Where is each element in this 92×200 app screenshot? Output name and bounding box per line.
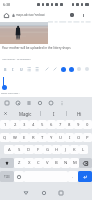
staticText: B (55, 160, 58, 166)
staticText: 3 (23, 122, 26, 128)
button[interactable]: Backspace (79, 158, 92, 168)
button[interactable]: Enter (78, 171, 92, 182)
staticText: Q (3, 135, 7, 141)
button[interactable]: 6 (47, 120, 56, 129)
button[interactable]: J (61, 145, 70, 154)
staticText: 6:38 (3, 2, 11, 7)
button[interactable]: 9 (74, 120, 83, 129)
button[interactable] (14, 171, 24, 182)
button[interactable]: G (43, 145, 52, 154)
staticText: Your mother will be uploaded in the litt… (2, 46, 71, 50)
button[interactable]: Hi (67, 108, 92, 119)
button[interactable]: More (75, 65, 83, 73)
button[interactable]: Emoji (59, 65, 67, 73)
button[interactable]: I (65, 133, 74, 142)
button[interactable]: Link (43, 65, 51, 73)
staticText: Magic (19, 111, 32, 117)
button[interactable]: Send (67, 65, 75, 73)
button[interactable]: U (56, 133, 65, 142)
button[interactable]: Tool 3 (34, 97, 45, 108)
button[interactable]: Tool 2 (23, 97, 34, 108)
staticText: 2 (14, 122, 17, 128)
staticText: E (23, 135, 26, 141)
button[interactable]: F (34, 145, 43, 154)
button[interactable]: P (83, 133, 92, 142)
button[interactable]: Y (47, 133, 56, 142)
button[interactable]: 1 (0, 120, 10, 129)
button[interactable]: Tool 1 (12, 97, 23, 108)
button[interactable]: E (20, 133, 29, 142)
button[interactable]: K (70, 145, 79, 154)
button[interactable]: C (34, 158, 43, 168)
button[interactable]: H (52, 145, 61, 154)
button[interactable]: List (25, 65, 33, 73)
button[interactable]: Quote (33, 65, 41, 73)
button[interactable]: Tool 0 (1, 97, 12, 108)
button[interactable]: R (29, 133, 38, 142)
button[interactable]: N (61, 158, 70, 168)
button[interactable]: B (52, 158, 61, 168)
button[interactable]: maps.advisor/nedcaoi (12, 9, 66, 21)
button[interactable]: S (14, 145, 24, 154)
button[interactable]: Shift (0, 158, 14, 168)
staticText: 6 (50, 122, 53, 128)
button[interactable]: Z (14, 158, 24, 168)
staticText: A (8, 147, 11, 153)
staticText: G (46, 147, 50, 153)
staticText: J (65, 147, 67, 153)
staticText: D (27, 147, 31, 153)
button[interactable]: Tabs (66, 9, 78, 21)
button[interactable]: V (43, 158, 52, 168)
button[interactable]: 4 (29, 120, 38, 129)
staticText: 7 (59, 122, 62, 128)
button[interactable]: 7 (56, 120, 65, 129)
button[interactable]: X (24, 158, 34, 168)
button[interactable]: 5 (38, 120, 47, 129)
button[interactable]: Attach (51, 65, 59, 73)
staticText: 4 (32, 122, 35, 128)
button[interactable]: Home (38, 187, 50, 199)
button[interactable]: T (38, 133, 47, 142)
button[interactable]: Format 0 (1, 65, 9, 73)
button[interactable]: . (68, 171, 78, 182)
button[interactable]: Options (83, 65, 91, 73)
button[interactable]: M (70, 158, 79, 168)
staticText: H (55, 147, 59, 153)
button[interactable]: Format 1 (9, 65, 17, 73)
button[interactable]: More options (78, 10, 89, 21)
button[interactable]: Back (20, 187, 32, 199)
staticText: 8 (68, 122, 71, 128)
button[interactable]: D (24, 145, 34, 154)
staticText: O (77, 135, 81, 141)
button[interactable]: 8 (65, 120, 74, 129)
button[interactable]: Tool 4 (45, 97, 56, 108)
staticText: . (72, 174, 74, 180)
button[interactable]: Tool 5 (56, 97, 67, 108)
button[interactable]: Recents (55, 187, 67, 199)
button[interactable]: W (10, 133, 20, 142)
button[interactable]: Symbols (0, 171, 14, 182)
staticText: I (12, 67, 14, 72)
staticText: K (73, 147, 76, 153)
staticText: I (53, 111, 55, 117)
button[interactable]: Q (0, 133, 10, 142)
button[interactable]: 0 (83, 120, 92, 129)
staticText: M (73, 160, 77, 166)
button[interactable]: L (79, 145, 88, 154)
button[interactable]: Format 2 (17, 65, 25, 73)
staticText: L (82, 147, 85, 153)
button[interactable]: Home (0, 9, 12, 21)
staticText: F (37, 147, 40, 153)
button[interactable]: Magic (11, 108, 40, 119)
button[interactable]: O (74, 133, 83, 142)
button[interactable]: A (4, 145, 14, 154)
staticText: U (20, 67, 23, 72)
staticText: Y (50, 135, 53, 141)
button[interactable]: Dismiss (0, 108, 11, 119)
staticText: U (59, 135, 63, 141)
button[interactable]: 3 (20, 120, 29, 129)
button[interactable]: I (41, 108, 66, 119)
staticText: S (18, 147, 21, 153)
button[interactable]: 2 (10, 120, 20, 129)
